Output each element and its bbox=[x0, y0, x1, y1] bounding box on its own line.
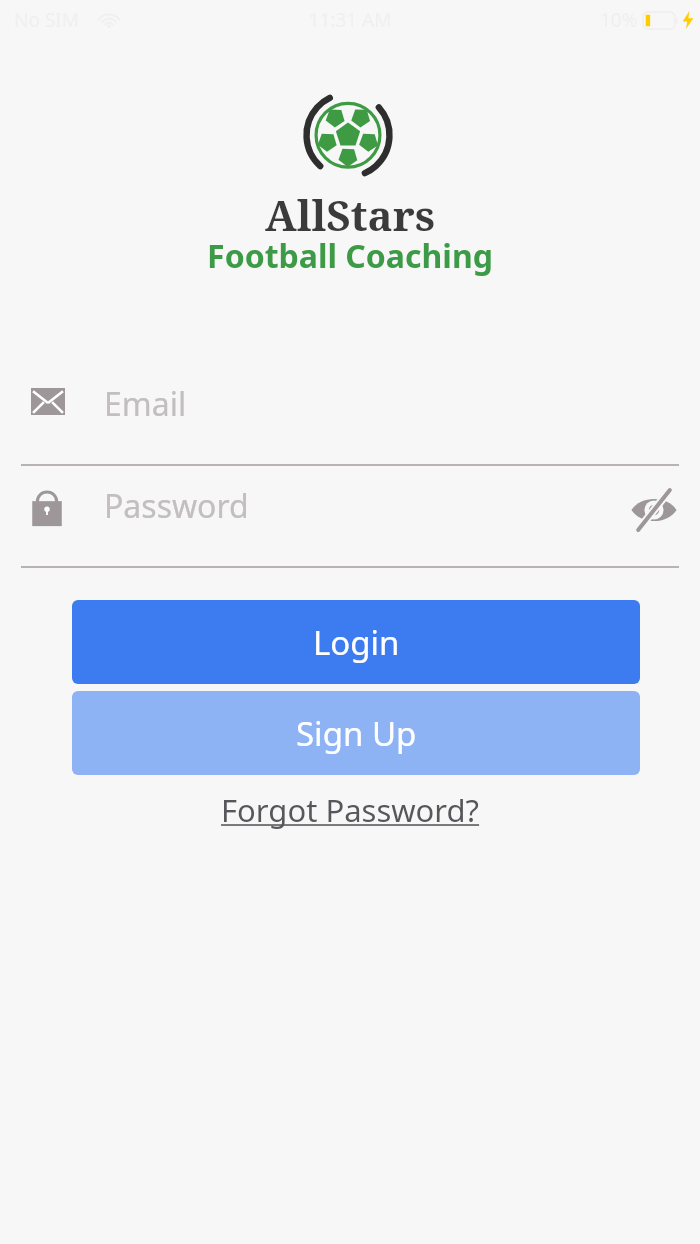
other: Email bbox=[31, 388, 65, 415]
staticText: AllStars bbox=[0, 186, 700, 243]
staticText: Sign Up bbox=[296, 711, 417, 756]
staticText: Login bbox=[313, 620, 400, 665]
button[interactable]: Email bbox=[0, 372, 700, 466]
button[interactable]: Sign Up bbox=[72, 691, 640, 775]
button[interactable] bbox=[14, 474, 614, 544]
staticText: Football Coaching bbox=[0, 234, 700, 278]
other: Password bbox=[29, 481, 65, 529]
staticText: 11:31 AM bbox=[0, 7, 700, 33]
staticText: Forgot Password? bbox=[221, 789, 480, 831]
staticText: Email bbox=[104, 382, 187, 426]
button[interactable]: Login bbox=[72, 600, 640, 684]
button[interactable]: Show password bbox=[620, 480, 688, 540]
staticText: Password bbox=[104, 484, 249, 528]
button[interactable]: Forgot Password? bbox=[213, 787, 488, 833]
